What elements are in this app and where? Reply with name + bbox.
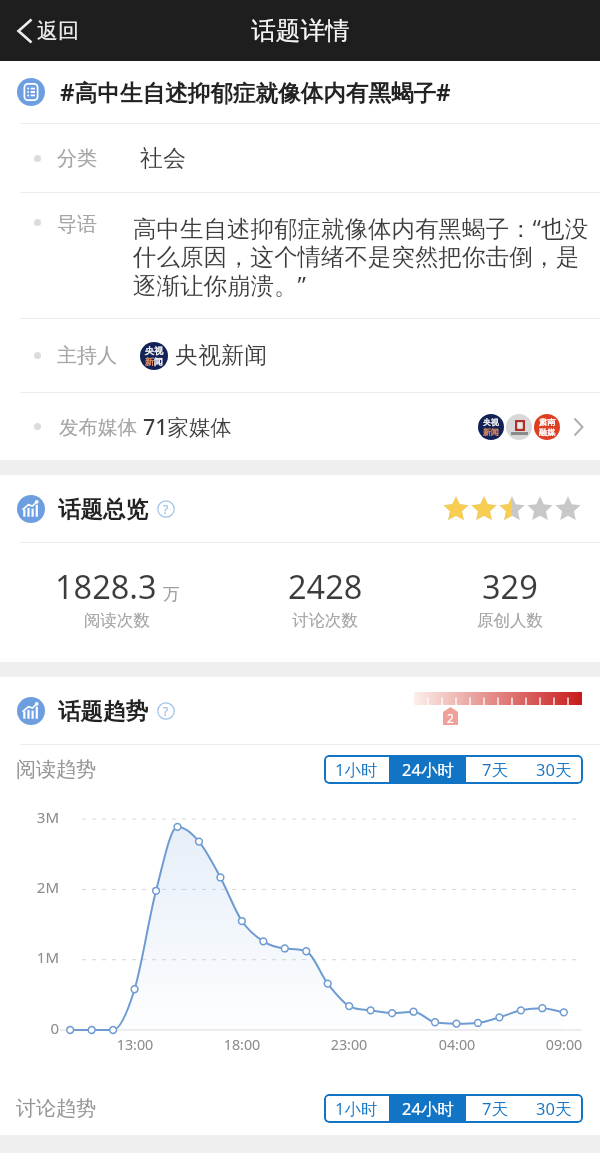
staticText: 社会 [140, 144, 186, 173]
staticText: 7天 [482, 758, 508, 781]
staticText: 导语 [57, 212, 97, 237]
staticText: 讨论趋势 [16, 1096, 96, 1121]
other: More media [573, 417, 584, 437]
staticText: 央视 [483, 417, 499, 427]
button[interactable]: 导语 [0, 193, 600, 318]
staticText: 新闻 [483, 427, 499, 437]
staticText: 2M [18, 877, 59, 897]
button[interactable]: Help [157, 500, 175, 518]
staticText: 2 [447, 710, 454, 726]
staticText: 24小时 [402, 1097, 454, 1120]
button[interactable]: 1小时 [324, 755, 389, 784]
staticText: 原创人数 [477, 610, 543, 631]
staticText: 30天 [536, 758, 572, 781]
button[interactable]: 7天 [466, 1094, 524, 1123]
staticText: 04:00 [422, 1035, 492, 1054]
button[interactable]: 1小时 [324, 1094, 389, 1123]
staticText: 高中生自述抑郁症就像体内有黑蝎子：“也没什么原因，这个情绪不是突然把你击倒，是逐… [133, 212, 600, 301]
staticText: 话题趋势 [58, 697, 148, 725]
staticText: 329 [482, 564, 538, 608]
button[interactable]: 24小时 [389, 1094, 466, 1123]
button[interactable]: 发布媒体 [0, 393, 600, 460]
staticText: 09:00 [529, 1035, 599, 1054]
staticText: 话题总览 [58, 495, 148, 523]
button[interactable]: 24小时 [389, 755, 466, 784]
staticText: 肃南 [539, 417, 555, 427]
button[interactable]: 主持人 [0, 319, 600, 392]
staticText: 阅读次数 [84, 610, 150, 631]
staticText: 1小时 [335, 758, 378, 781]
staticText: ? [163, 703, 169, 719]
button[interactable]: Help [157, 702, 175, 720]
staticText: 0 [18, 1018, 59, 1038]
staticText: 阅读趋势 [16, 757, 96, 782]
staticText: 发布媒体 [59, 413, 143, 440]
button[interactable]: 30天 [524, 755, 583, 784]
staticText: 央视 [145, 345, 163, 356]
staticText: 新 [145, 356, 154, 367]
staticText: 分类 [57, 146, 97, 171]
staticText: 7天 [482, 1097, 508, 1120]
button[interactable]: #高中生自述抑郁症就像体内有黑蝎子# [0, 61, 600, 123]
staticText: 万 [163, 584, 180, 605]
staticText: 央视新闻 [175, 341, 267, 370]
staticText: 24小时 [402, 758, 454, 781]
staticText: 3M [18, 807, 59, 827]
staticText: #高中生自述抑郁症就像体内有黑蝎子# [60, 77, 451, 108]
staticText: 返回 [37, 18, 79, 44]
staticText: 71家媒体 [143, 412, 233, 441]
button[interactable]: 分类 [0, 124, 600, 192]
staticText: 1M [18, 947, 59, 967]
staticText: 23:00 [314, 1035, 384, 1054]
staticText: 主持人 [57, 343, 117, 368]
staticText: 闻 [154, 356, 163, 367]
staticText: 1828.3 [55, 564, 157, 608]
staticText: 13:00 [100, 1035, 170, 1054]
button[interactable]: 30天 [524, 1094, 583, 1123]
staticText: 18:00 [207, 1035, 277, 1054]
button[interactable]: 返回 [0, 0, 93, 61]
staticText: 融媒 [539, 427, 555, 437]
staticText: 讨论次数 [292, 610, 358, 631]
staticText: ? [163, 501, 169, 517]
staticText: 30天 [536, 1097, 572, 1120]
staticText: 1小时 [335, 1097, 378, 1120]
button[interactable]: 7天 [466, 755, 524, 784]
staticText: 话题详情 [251, 15, 350, 46]
staticText: 2428 [288, 564, 363, 608]
